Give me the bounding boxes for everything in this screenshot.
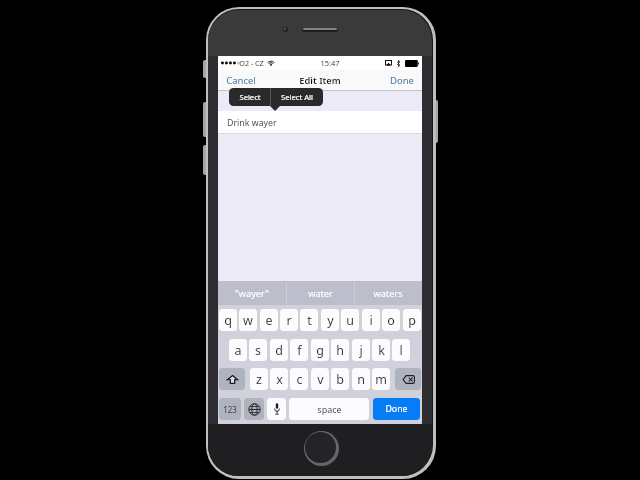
staticText: Edit Item (299, 74, 341, 87)
staticText: q (224, 312, 232, 329)
button[interactable]: Shift (219, 368, 245, 390)
button[interactable]: Drink wayer (218, 111, 422, 134)
staticText: d (275, 342, 283, 359)
button[interactable]: f (290, 339, 308, 361)
button[interactable]: Done (387, 72, 417, 89)
button[interactable]: h (331, 339, 349, 361)
button[interactable]: 123 (219, 398, 241, 420)
staticText: b (336, 371, 344, 388)
staticText: Drink wayer (227, 117, 277, 129)
staticText: u (346, 312, 354, 329)
staticText: l (399, 342, 403, 359)
button[interactable]: c (290, 368, 308, 390)
button[interactable]: v (311, 368, 329, 390)
staticText: g (316, 342, 324, 359)
staticText: k (378, 342, 385, 359)
staticText: Done (390, 74, 414, 87)
staticText: space (317, 403, 342, 415)
button[interactable]: m (372, 368, 390, 390)
button[interactable]: d (270, 339, 288, 361)
button[interactable]: Backspace (395, 368, 421, 390)
button[interactable]: w (239, 309, 257, 331)
button[interactable]: b (331, 368, 349, 390)
button[interactable]: a (229, 339, 247, 361)
button[interactable]: n (352, 368, 370, 390)
staticText: t (307, 312, 312, 329)
button[interactable]: Dictation (267, 398, 286, 420)
button[interactable]: "wayer" (218, 281, 286, 305)
button[interactable]: e (260, 309, 278, 331)
button[interactable]: s (249, 339, 267, 361)
staticText: "wayer" (235, 287, 269, 300)
staticText: f (297, 342, 302, 359)
button[interactable]: space (289, 398, 369, 420)
button[interactable]: k (372, 339, 390, 361)
button[interactable]: Change keyboard language (244, 398, 264, 420)
button[interactable]: o (382, 309, 400, 331)
staticText: w (243, 312, 253, 329)
staticText: O2 - CZ (239, 58, 264, 68)
button[interactable]: Select (229, 88, 270, 106)
button[interactable]: water (286, 281, 354, 305)
staticText: x (276, 371, 283, 388)
staticText: j (359, 342, 363, 359)
staticText: Select All (281, 92, 313, 102)
button[interactable]: waters (354, 281, 422, 305)
button[interactable]: i (362, 309, 380, 331)
staticText: 123 (223, 404, 237, 415)
button[interactable]: r (280, 309, 298, 331)
button[interactable]: l (392, 339, 410, 361)
staticText: water (308, 287, 333, 300)
staticText: y (327, 312, 334, 329)
staticText: o (387, 312, 395, 329)
staticText: i (369, 312, 373, 329)
button[interactable]: t (300, 309, 318, 331)
staticText: 15:47 (320, 58, 340, 68)
staticText: n (357, 371, 365, 388)
button[interactable]: z (250, 368, 268, 390)
staticText: Cancel (226, 74, 256, 87)
button[interactable]: x (270, 368, 288, 390)
button[interactable]: q (219, 309, 237, 331)
staticText: v (317, 371, 324, 388)
staticText: s (255, 342, 261, 359)
staticText: Done (385, 403, 408, 415)
staticText: m (375, 371, 387, 388)
button[interactable]: Done (373, 398, 420, 420)
staticText: e (265, 312, 273, 329)
button[interactable]: p (403, 309, 421, 331)
button[interactable]: Select All (271, 88, 323, 106)
staticText: p (408, 312, 416, 329)
staticText: a (234, 342, 242, 359)
button[interactable]: u (341, 309, 359, 331)
staticText: waters (373, 287, 403, 300)
staticText: z (256, 371, 262, 388)
button[interactable]: j (352, 339, 370, 361)
staticText: Select (239, 92, 261, 102)
button[interactable]: Cancel (223, 72, 259, 89)
staticText: r (286, 312, 292, 329)
staticText: h (336, 342, 344, 359)
button[interactable]: y (321, 309, 339, 331)
staticText: c (296, 371, 303, 388)
button[interactable]: g (311, 339, 329, 361)
